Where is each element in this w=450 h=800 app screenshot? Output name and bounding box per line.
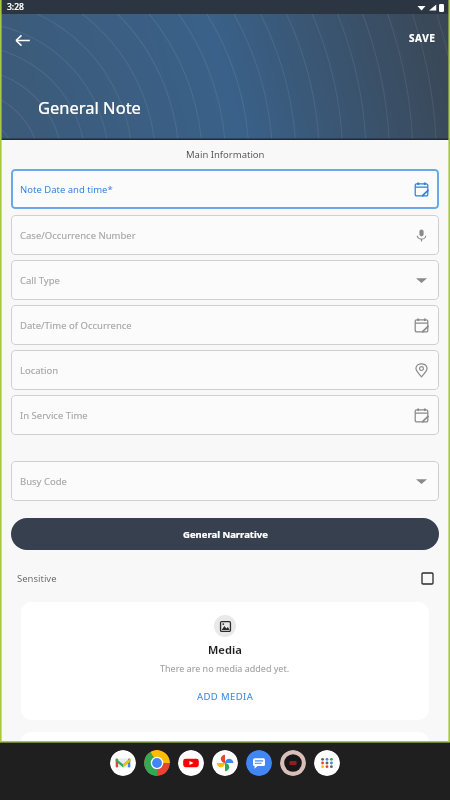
button[interactable]: SAVE <box>399 27 446 49</box>
button[interactable]: Photos <box>212 750 238 776</box>
staticText: General Note <box>38 96 141 118</box>
button[interactable]: Camera <box>280 750 306 776</box>
staticText: Call Type <box>20 274 60 287</box>
button[interactable]: ADD MEDIA <box>187 687 264 706</box>
staticText: In Service Time <box>20 409 88 422</box>
staticText: 3:28 <box>7 1 24 13</box>
button[interactable]: Date/Time of Occurrence <box>11 305 439 345</box>
staticText: Date/Time of Occurrence <box>20 319 132 332</box>
button[interactable]: Busy Code <box>11 461 439 501</box>
staticText: Media <box>208 642 242 657</box>
button[interactable]: Case/Occurrence Number <box>11 215 439 255</box>
staticText: General Narrative <box>183 528 268 541</box>
staticText: Main Information <box>186 148 265 161</box>
button[interactable]: General Narrative <box>11 518 439 550</box>
button[interactable]: In Service Time <box>11 395 439 435</box>
staticText: Sensitive <box>17 572 57 585</box>
staticText: Busy Code <box>20 475 67 488</box>
button[interactable]: Location <box>11 350 439 390</box>
button[interactable]: YouTube <box>178 750 204 776</box>
button[interactable]: Chrome <box>144 750 170 776</box>
button[interactable]: Note Date and time* <box>11 169 439 209</box>
staticText: Note Date and time* <box>20 183 113 196</box>
staticText: ADD MEDIA <box>197 690 254 703</box>
button[interactable]: Call Type <box>11 260 439 300</box>
button[interactable]: Sensitive <box>0 568 450 589</box>
button[interactable]: Messages <box>246 750 272 776</box>
button[interactable]: Back <box>6 24 38 56</box>
button[interactable]: All apps <box>314 750 340 776</box>
staticText: Case/Occurrence Number <box>20 229 136 242</box>
staticText: There are no media added yet. <box>160 662 290 674</box>
button[interactable]: Gmail <box>110 750 136 776</box>
staticText: Location <box>20 364 59 377</box>
button[interactable] <box>21 732 429 742</box>
button[interactable]: Media <box>21 602 429 720</box>
staticText: SAVE <box>409 31 436 45</box>
